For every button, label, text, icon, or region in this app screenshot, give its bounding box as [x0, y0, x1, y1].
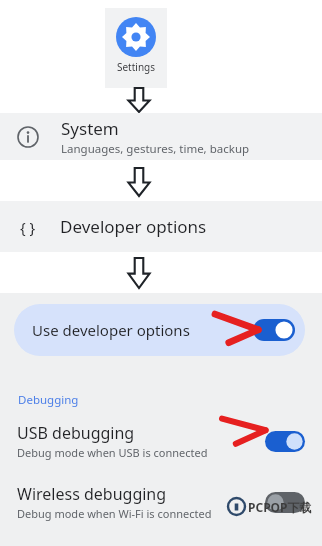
button[interactable]: { } — [0, 201, 322, 252]
staticText: Languages, gestures, time, backup — [61, 141, 250, 157]
staticText: Debugging — [18, 392, 79, 408]
button[interactable]: System — [0, 113, 322, 160]
button[interactable]: Settings — [105, 8, 167, 88]
staticText: Debug mode when Wi-Fi is connected — [17, 506, 212, 521]
staticText: Developer options — [60, 215, 207, 238]
button[interactable]: USB debugging toggle — [265, 431, 305, 452]
button[interactable]: Use developer options toggle — [253, 319, 295, 341]
staticText: USB debugging — [17, 422, 135, 444]
button[interactable]: Wireless debugging toggle — [265, 492, 305, 513]
button[interactable]: Wireless debugging — [0, 476, 322, 528]
staticText: Wireless debugging — [17, 483, 167, 505]
staticText: { } — [20, 217, 36, 237]
staticText: Settings — [105, 60, 167, 74]
staticText: Debug mode when USB is connected — [17, 445, 208, 460]
button[interactable]: Use developer options — [14, 304, 305, 356]
staticText: PCPOP下载 — [248, 499, 312, 515]
button[interactable]: USB debugging — [0, 415, 322, 467]
staticText: System — [61, 117, 119, 140]
staticText: Use developer options — [32, 320, 190, 340]
